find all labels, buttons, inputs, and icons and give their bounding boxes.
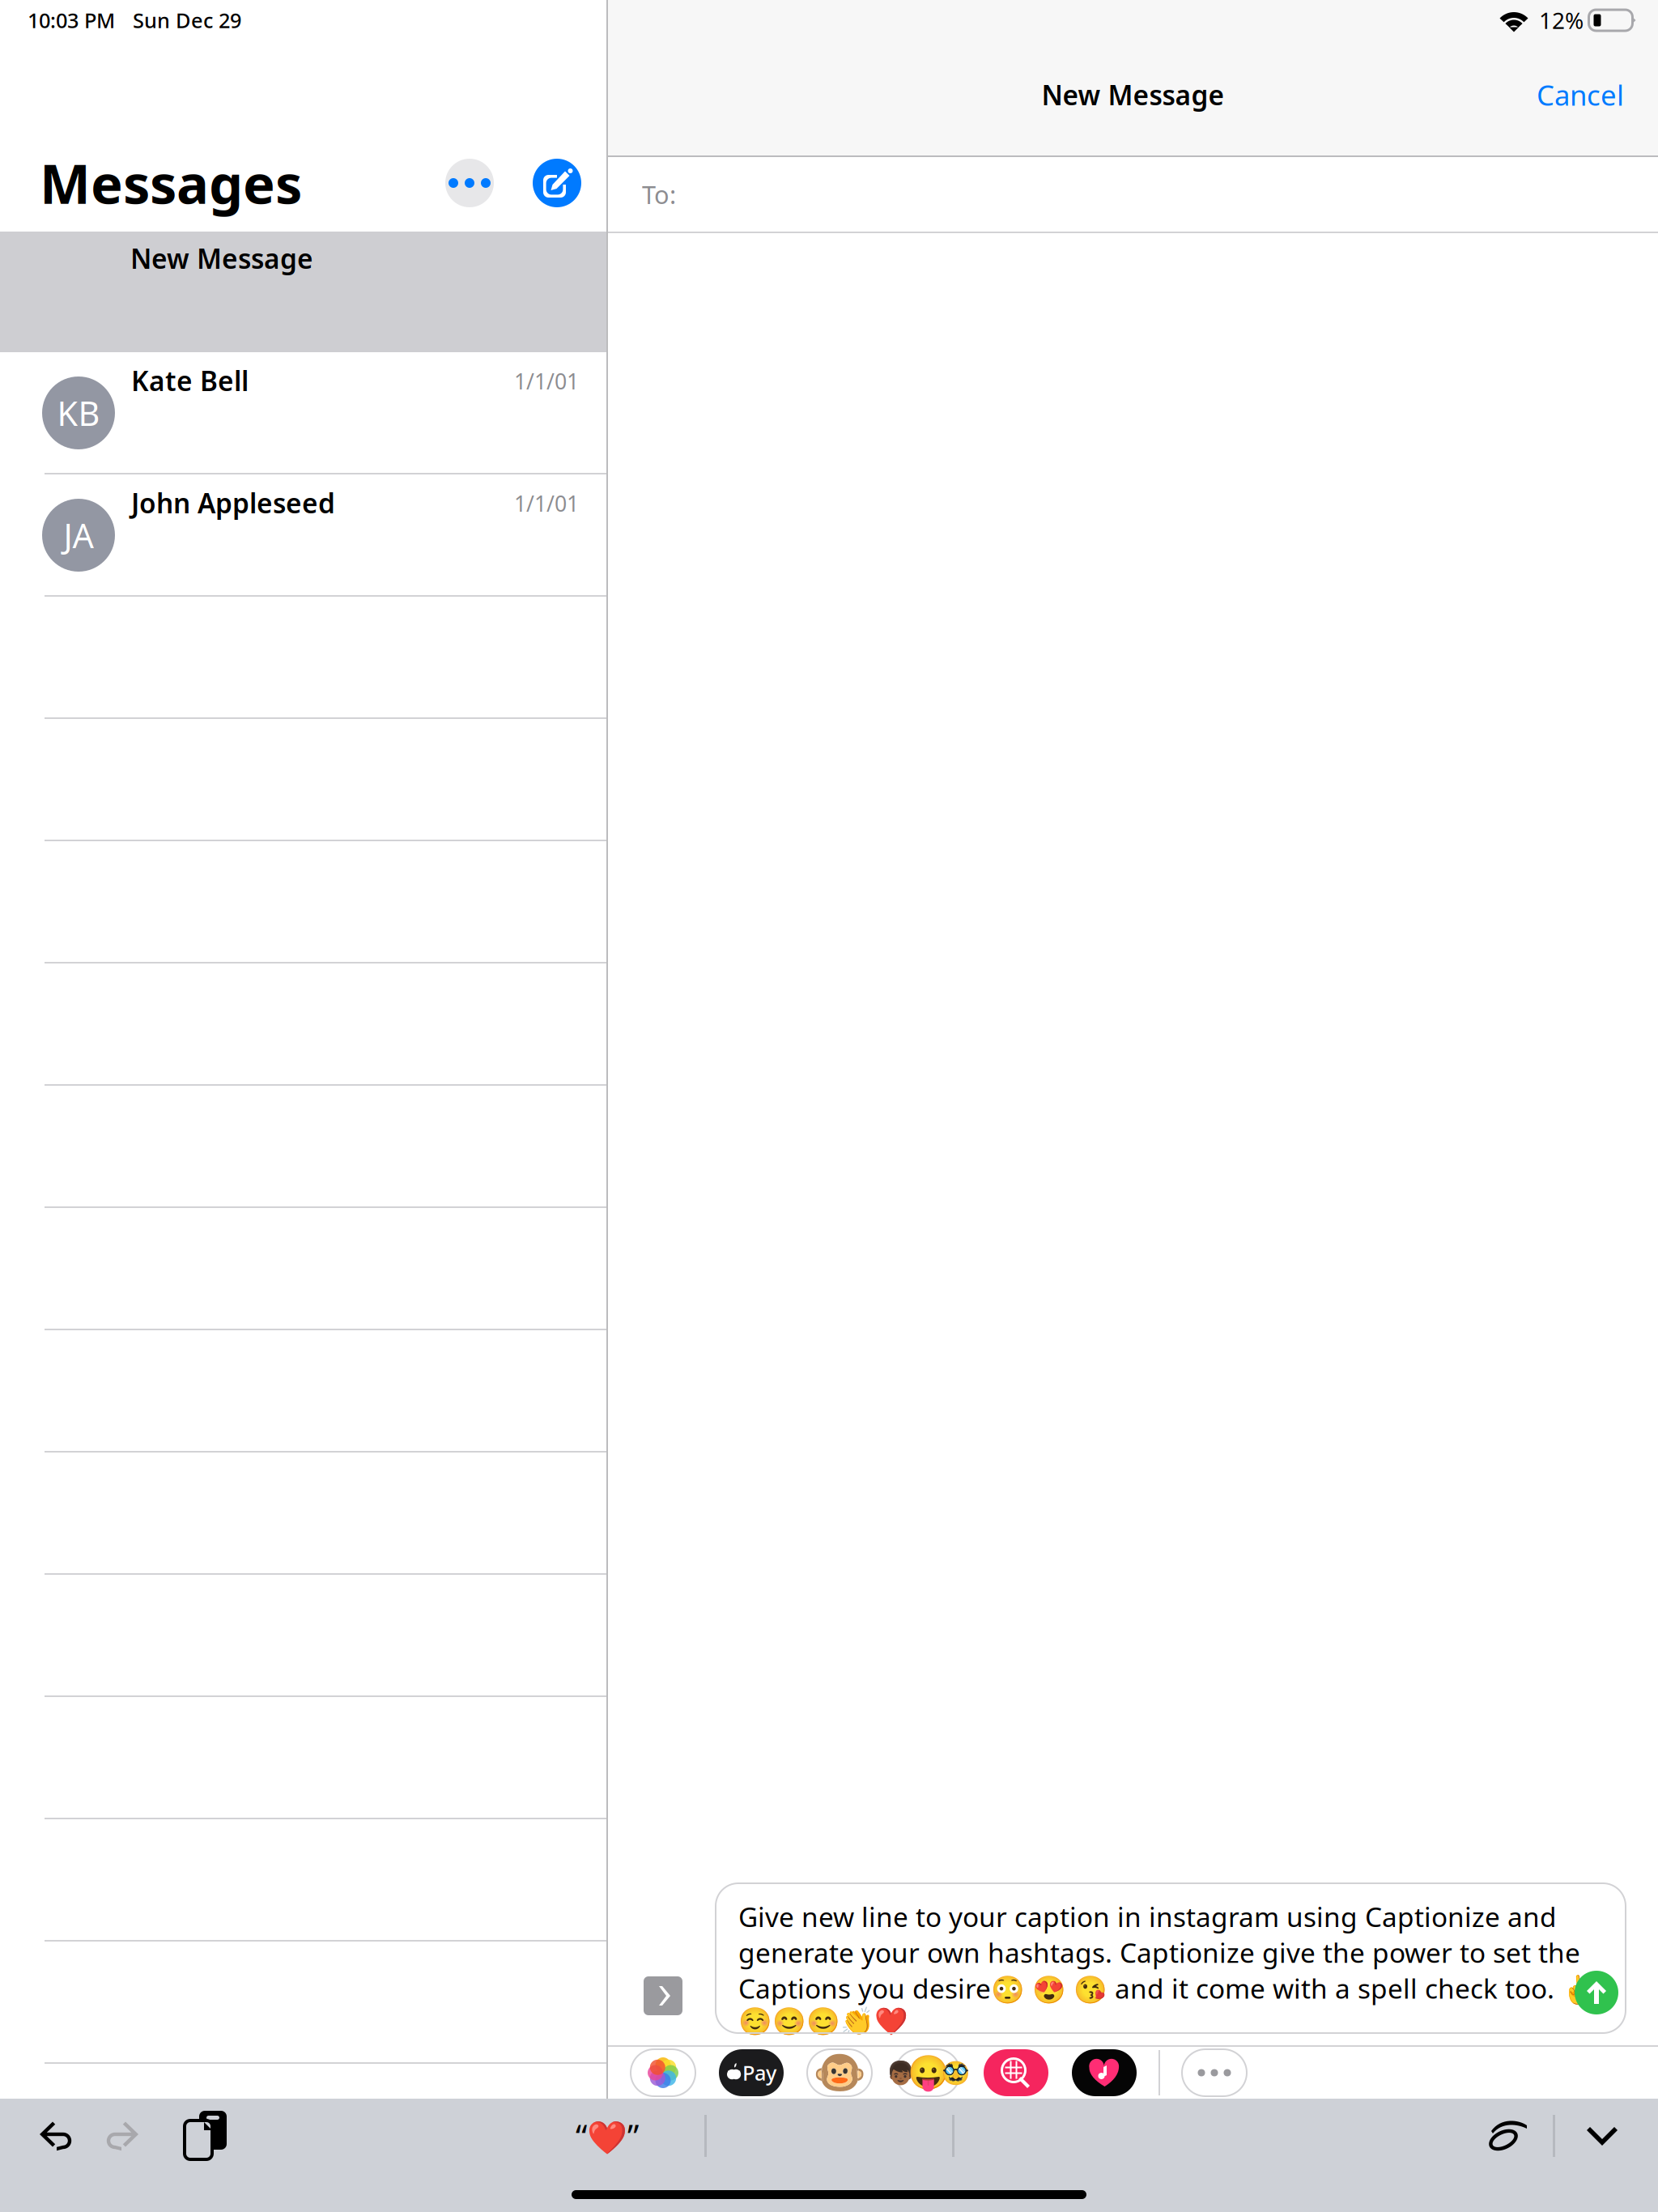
- staticText: 🐵: [813, 2048, 866, 2097]
- staticText: New Message: [1042, 77, 1224, 113]
- button[interactable]: Paste: [185, 2111, 228, 2161]
- button[interactable]: “❤️”: [559, 2112, 656, 2160]
- staticText: JA: [64, 513, 94, 557]
- button[interactable]: Handwriting: [1485, 2115, 1532, 2157]
- staticText: To:: [642, 178, 676, 211]
- staticText: Sun Dec 29: [133, 7, 241, 34]
- staticText: 1/1/01: [514, 367, 579, 395]
- button[interactable]: JA: [0, 474, 606, 597]
- button[interactable]: Redo: [96, 2117, 142, 2155]
- button[interactable]: Undo: [36, 2117, 83, 2155]
- button[interactable]: New Message: [0, 232, 606, 352]
- staticText: Kate Bell: [131, 363, 249, 399]
- staticText: “❤️”: [576, 2114, 639, 2157]
- button[interactable]: KB: [0, 352, 606, 474]
- button[interactable]: Music: [1072, 2049, 1137, 2096]
- button[interactable]: Expand: [644, 1976, 682, 2015]
- staticText: Cancel: [1537, 76, 1624, 113]
- button[interactable]: Image Search: [984, 2049, 1048, 2096]
- staticText: 😛: [907, 2054, 948, 2092]
- staticText: 10:03 PM: [28, 7, 115, 34]
- staticText: Messages: [40, 147, 302, 219]
- staticText: John Appleseed: [131, 485, 335, 521]
- button[interactable]: Memoji: [895, 2049, 960, 2096]
- button[interactable]: Cancel: [1504, 58, 1658, 131]
- staticText: New Message: [130, 240, 313, 276]
- staticText: 1/1/01: [514, 489, 579, 518]
- staticText: Pay: [742, 2059, 776, 2086]
- button[interactable]: Photos: [631, 2049, 695, 2096]
- staticText: 12%: [1539, 5, 1584, 35]
- staticText: 🥸: [941, 2060, 969, 2086]
- button[interactable]: Apple Pay: [719, 2049, 784, 2096]
- button[interactable]: Animoji: [807, 2049, 872, 2096]
- button[interactable]: New Message: [533, 159, 581, 207]
- staticText: Give new line to your caption in instagr…: [738, 1899, 1596, 2037]
- staticText: 👦🏾: [886, 2060, 914, 2086]
- button[interactable]: More: [445, 159, 494, 207]
- staticText: KB: [57, 391, 100, 435]
- button[interactable]: Hide Keyboard: [1583, 2118, 1622, 2154]
- button[interactable]: Send: [1575, 1971, 1618, 2014]
- button[interactable]: More Apps: [1182, 2049, 1247, 2096]
